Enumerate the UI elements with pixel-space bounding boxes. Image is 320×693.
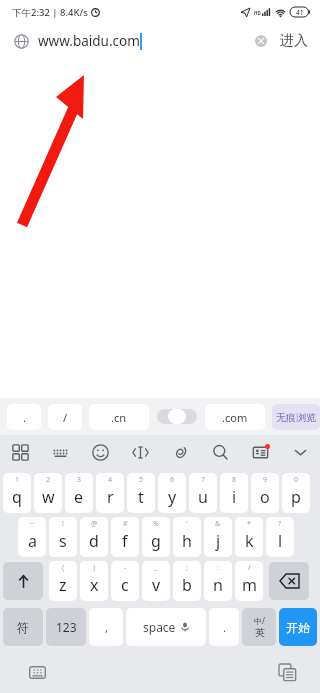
button[interactable]: &	[204, 517, 232, 557]
staticText: #	[123, 519, 128, 529]
button[interactable]: 符	[3, 608, 43, 646]
button[interactable]: 进入	[280, 32, 308, 50]
staticText: s	[59, 530, 67, 552]
staticText: -	[124, 563, 127, 573]
button[interactable]: Clip	[160, 435, 200, 469]
staticText: :	[217, 563, 219, 573]
staticText: _	[154, 563, 158, 573]
staticText: /	[248, 563, 251, 573]
button[interactable]: Apps	[0, 435, 40, 469]
button[interactable]: Clipboard	[276, 661, 298, 683]
staticText: v	[152, 574, 161, 596]
staticText: 中/	[254, 615, 265, 626]
button[interactable]: 开始	[279, 608, 317, 646]
button[interactable]: )	[80, 561, 108, 601]
staticText: 123	[56, 619, 77, 635]
button[interactable]: .	[209, 608, 239, 646]
staticText: 41	[296, 8, 304, 17]
button[interactable]: Card	[240, 435, 280, 469]
staticText: space	[143, 619, 176, 635]
staticText: 开始	[286, 620, 310, 635]
button[interactable]: *	[235, 517, 263, 557]
button[interactable]: 9	[251, 473, 279, 513]
staticText: 0	[294, 475, 299, 485]
button[interactable]: '	[173, 517, 201, 557]
button[interactable]: .cn	[89, 404, 149, 430]
button[interactable]: %	[142, 517, 170, 557]
button[interactable]: @	[80, 517, 108, 557]
staticText: c	[121, 574, 129, 596]
button[interactable]: Backspace	[269, 562, 309, 600]
button[interactable]: ,	[89, 608, 123, 646]
button[interactable]: Shift	[3, 562, 43, 600]
button[interactable]: /	[235, 561, 263, 601]
button[interactable]: Search	[200, 435, 240, 469]
staticText: )	[93, 563, 96, 573]
staticText: x	[90, 574, 99, 596]
button[interactable]: _	[142, 561, 170, 601]
staticText: m	[242, 574, 257, 596]
staticText: o	[260, 486, 270, 508]
staticText: d	[89, 530, 99, 552]
staticText: j	[216, 530, 221, 552]
staticText: w	[42, 486, 55, 508]
button[interactable]: ?	[266, 517, 294, 557]
staticText: e	[74, 486, 84, 508]
button[interactable]: 无痕浏览	[272, 404, 320, 430]
button[interactable]: space	[126, 608, 206, 646]
staticText: r	[107, 486, 114, 508]
button[interactable]: Collapse	[280, 435, 320, 469]
button[interactable]: :	[204, 561, 232, 601]
staticText: 1	[15, 475, 20, 485]
staticText: /	[63, 410, 68, 425]
button[interactable]: Text cursor	[120, 435, 160, 469]
staticText: ;	[186, 563, 188, 573]
button[interactable]: -	[111, 561, 139, 601]
staticText: 无痕浏览	[276, 411, 316, 424]
button[interactable]: 2	[34, 473, 62, 513]
button[interactable]: 6	[158, 473, 186, 513]
staticText: '	[186, 519, 188, 529]
staticText: 7	[201, 475, 206, 485]
button[interactable]: Keyboard	[26, 661, 48, 683]
staticText: @	[91, 519, 98, 529]
staticText: ?	[278, 519, 282, 529]
button[interactable]: .	[7, 404, 41, 430]
staticText: g	[151, 530, 161, 552]
staticText: 8	[232, 475, 237, 485]
button[interactable]: Emoji	[80, 435, 120, 469]
button[interactable]: 4	[96, 473, 124, 513]
button[interactable]: 0	[282, 473, 310, 513]
staticText: 3	[77, 475, 82, 485]
staticText: i	[232, 486, 237, 508]
staticText: z	[59, 574, 67, 596]
button[interactable]: 123	[46, 608, 86, 646]
button[interactable]: Site info	[8, 28, 34, 54]
button[interactable]: 中/	[242, 608, 276, 646]
button[interactable]: Toggle	[157, 409, 197, 424]
staticText: (	[62, 563, 65, 573]
button[interactable]: ~	[18, 517, 46, 557]
button[interactable]: Clear	[248, 28, 274, 54]
staticText: 英	[255, 626, 265, 639]
button[interactable]: ;	[173, 561, 201, 601]
button[interactable]: 8	[220, 473, 248, 513]
button[interactable]: (	[49, 561, 77, 601]
button[interactable]: /	[48, 404, 82, 430]
staticText: %	[153, 519, 159, 529]
staticText: 2	[46, 475, 51, 485]
staticText: l	[278, 530, 283, 552]
staticText: .com	[222, 410, 248, 425]
button[interactable]: 5	[127, 473, 155, 513]
button[interactable]: 7	[189, 473, 217, 513]
button[interactable]: 1	[3, 473, 31, 513]
staticText: t	[138, 486, 144, 508]
button[interactable]: #	[111, 517, 139, 557]
button[interactable]: 3	[65, 473, 93, 513]
staticText: 6	[170, 475, 175, 485]
staticText: .	[223, 620, 226, 635]
staticText: 5	[139, 475, 144, 485]
button[interactable]: !	[49, 517, 77, 557]
button[interactable]: .com	[205, 404, 265, 430]
button[interactable]: Keyboard layout	[40, 435, 80, 469]
